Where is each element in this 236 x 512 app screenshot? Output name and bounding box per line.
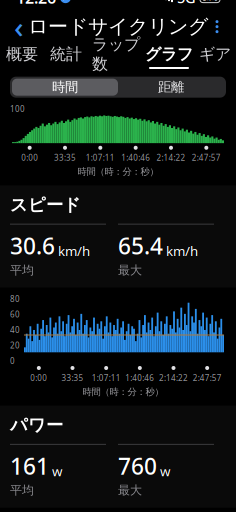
staticText: スピード [10, 194, 81, 216]
staticText: 概要 [6, 44, 38, 64]
button[interactable]: 戻る [2, 12, 36, 42]
staticText: ラップ数 [92, 34, 140, 74]
button[interactable]: ラップ数 [88, 43, 144, 71]
staticText: 30.6 [10, 231, 55, 261]
staticText: ➤ [62, 0, 69, 2]
staticText: 33:35 [54, 152, 76, 163]
staticText: 0 [10, 355, 15, 366]
staticText: 65.4 [118, 231, 163, 261]
staticText: 1:07:11 [92, 372, 121, 383]
staticText: 760 [118, 451, 157, 481]
staticText: 統計 [50, 44, 82, 64]
staticText: 時間（時：分：秒） [82, 386, 163, 398]
staticText: 距離 [158, 79, 184, 95]
staticText: 1:40:46 [121, 152, 150, 163]
staticText: ‹ [14, 7, 24, 46]
staticText: 20 [10, 340, 20, 351]
staticText: 33:35 [61, 372, 83, 383]
button[interactable]: ギア [194, 43, 236, 71]
button[interactable]: その他のオプション [200, 12, 234, 42]
staticText: 0:00 [21, 152, 38, 163]
staticText: km/h [166, 242, 198, 260]
staticText: 161 [10, 451, 49, 481]
staticText: 100 [10, 104, 25, 114]
staticText: km/h [58, 242, 90, 260]
button[interactable]: 時間 [12, 79, 118, 96]
staticText: w [160, 462, 170, 480]
button[interactable]: グラフ [144, 43, 194, 71]
staticText: 80 [10, 293, 20, 304]
staticText: パワー [10, 415, 63, 436]
staticText: 0:00 [30, 372, 47, 383]
button[interactable]: 統計 [44, 43, 88, 71]
staticText: 82 [205, 0, 215, 4]
staticText: 12:26 [16, 0, 56, 8]
staticText: 時間 [52, 79, 78, 95]
staticText: 平均 [10, 263, 34, 277]
staticText: 最大 [118, 263, 142, 277]
staticText: 40 [10, 324, 20, 335]
staticText: 2:14:22 [159, 372, 188, 383]
staticText: 1:40:46 [125, 372, 154, 383]
staticText: 平均 [10, 483, 34, 498]
button[interactable]: 概要 [0, 43, 44, 71]
staticText: ロードサイクリング [28, 14, 208, 39]
staticText: グラフ [145, 44, 193, 64]
staticText: 時間（時：分：秒） [77, 166, 158, 177]
staticText: 2:47:57 [192, 152, 221, 163]
button[interactable]: 距離 [118, 79, 224, 96]
staticText: 2:47:57 [193, 372, 222, 383]
staticText: ギア [199, 44, 231, 64]
staticText: w [52, 462, 62, 480]
staticText: 2:14:22 [156, 152, 185, 163]
staticText: 1:07:11 [86, 152, 115, 163]
staticText: 60 [10, 309, 20, 320]
staticText: 5G [177, 0, 196, 7]
staticText: 最大 [118, 483, 142, 498]
